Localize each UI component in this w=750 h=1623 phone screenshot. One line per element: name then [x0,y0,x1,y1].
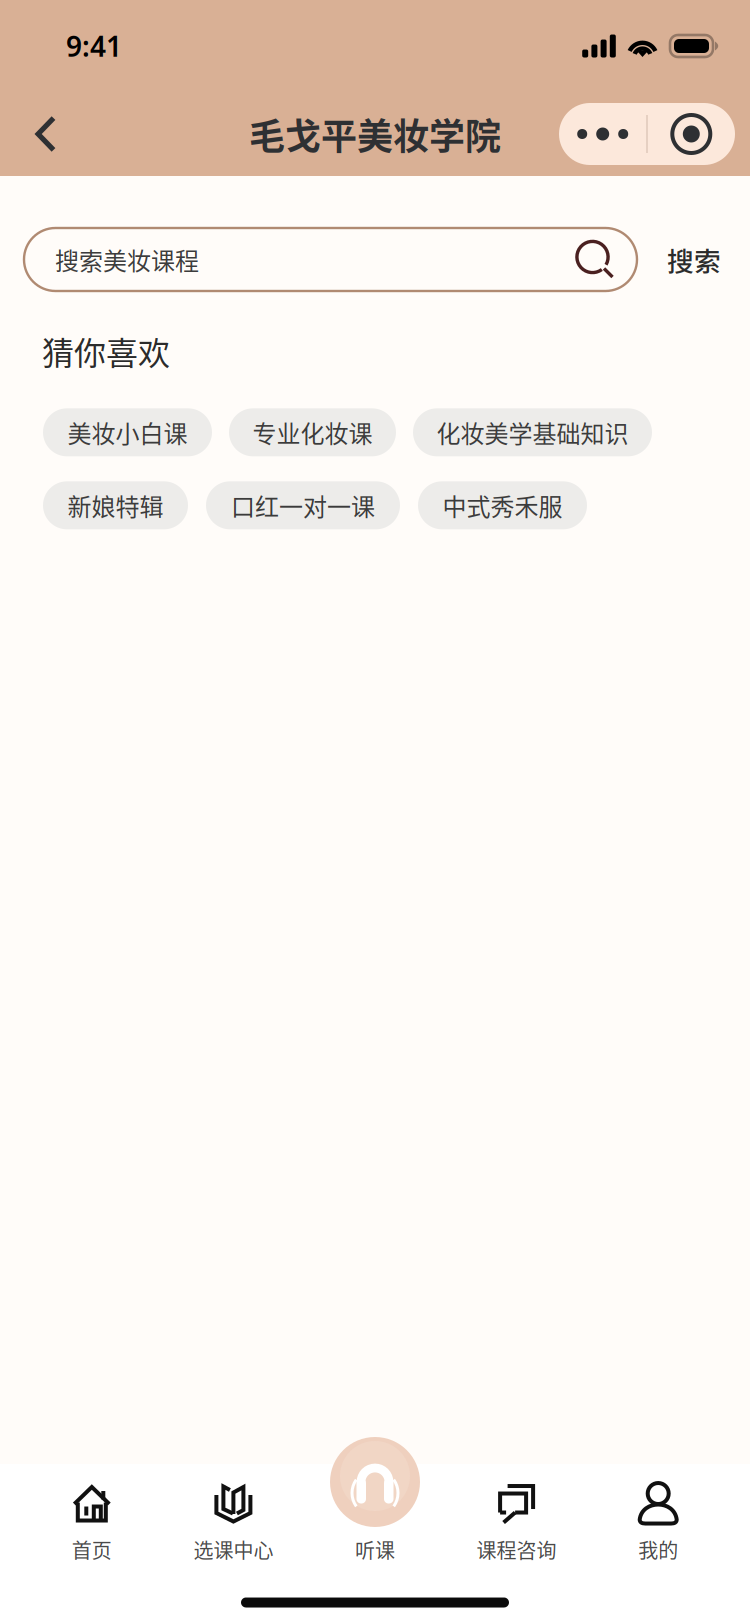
button[interactable]: 我的 [587,1464,729,1582]
button[interactable]: 专业化妆课 [229,408,396,456]
staticText: 毛戈平美妆学院 [249,108,501,160]
staticText: 新娘特辑 [67,488,163,523]
staticText: 化妆美学基础知识 [436,415,628,450]
button[interactable]: Close mini program [648,103,735,165]
button[interactable]: 新娘特辑 [43,481,188,529]
button[interactable]: More [559,103,646,165]
button[interactable]: 听课 [304,1464,446,1582]
button[interactable]: 口红一对一课 [206,481,400,529]
button[interactable]: 中式秀禾服 [418,481,587,529]
staticText: 中式秀禾服 [442,488,562,523]
button[interactable]: Back [11,98,81,170]
staticText: 9:41 [66,27,122,65]
button[interactable]: 听课 [330,1437,420,1527]
staticText: 猜你喜欢 [42,328,170,374]
staticText: 首页 [72,1535,112,1564]
staticText: 搜索 [667,240,721,279]
button[interactable]: 化妆美学基础知识 [413,408,652,456]
staticText: 课程咨询 [477,1535,557,1564]
staticText: 我的 [638,1535,678,1564]
button[interactable]: 课程咨询 [446,1464,587,1582]
button[interactable]: 搜索美妆课程 [24,228,637,291]
button[interactable]: 搜索 [667,228,721,291]
staticText: 口红一对一课 [231,488,375,523]
button[interactable]: 美妆小白课 [43,408,212,456]
staticText: 搜索美妆课程 [55,242,199,277]
button[interactable]: 首页 [21,1464,163,1582]
staticText: 美妆小白课 [67,415,187,450]
button[interactable]: 选课中心 [163,1464,304,1582]
staticText: 专业化妆课 [252,415,372,450]
staticText: 听课 [355,1535,395,1564]
staticText: 选课中心 [193,1535,273,1564]
